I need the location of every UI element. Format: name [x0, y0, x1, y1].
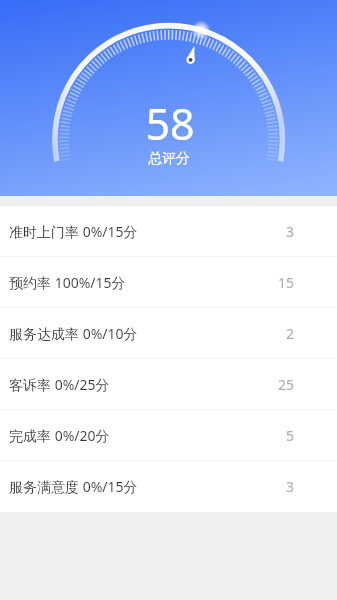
staticText: 总评分: [148, 150, 190, 168]
staticText: 3: [286, 477, 295, 496]
button[interactable]: 服务满意度 0%/15分: [0, 461, 337, 512]
staticText: 服务达成率 0%/10分: [9, 324, 138, 343]
staticText: 25: [278, 375, 295, 394]
button[interactable]: 预约率 100%/15分: [0, 257, 337, 308]
button[interactable]: 服务达成率 0%/10分: [0, 308, 337, 359]
staticText: 准时上门率 0%/15分: [9, 222, 138, 241]
staticText: 15: [278, 273, 295, 292]
staticText: 服务满意度 0%/15分: [9, 477, 138, 496]
button[interactable]: 完成率 0%/20分: [0, 410, 337, 461]
staticText: 3: [286, 222, 295, 241]
staticText: 预约率 100%/15分: [9, 273, 126, 292]
staticText: 客诉率 0%/25分: [9, 375, 110, 394]
staticText: 完成率 0%/20分: [9, 426, 110, 445]
staticText: 58: [145, 94, 195, 153]
staticText: 5: [286, 426, 295, 445]
button[interactable]: 准时上门率 0%/15分: [0, 206, 337, 257]
button[interactable]: 客诉率 0%/25分: [0, 359, 337, 410]
staticText: 2: [286, 324, 295, 343]
